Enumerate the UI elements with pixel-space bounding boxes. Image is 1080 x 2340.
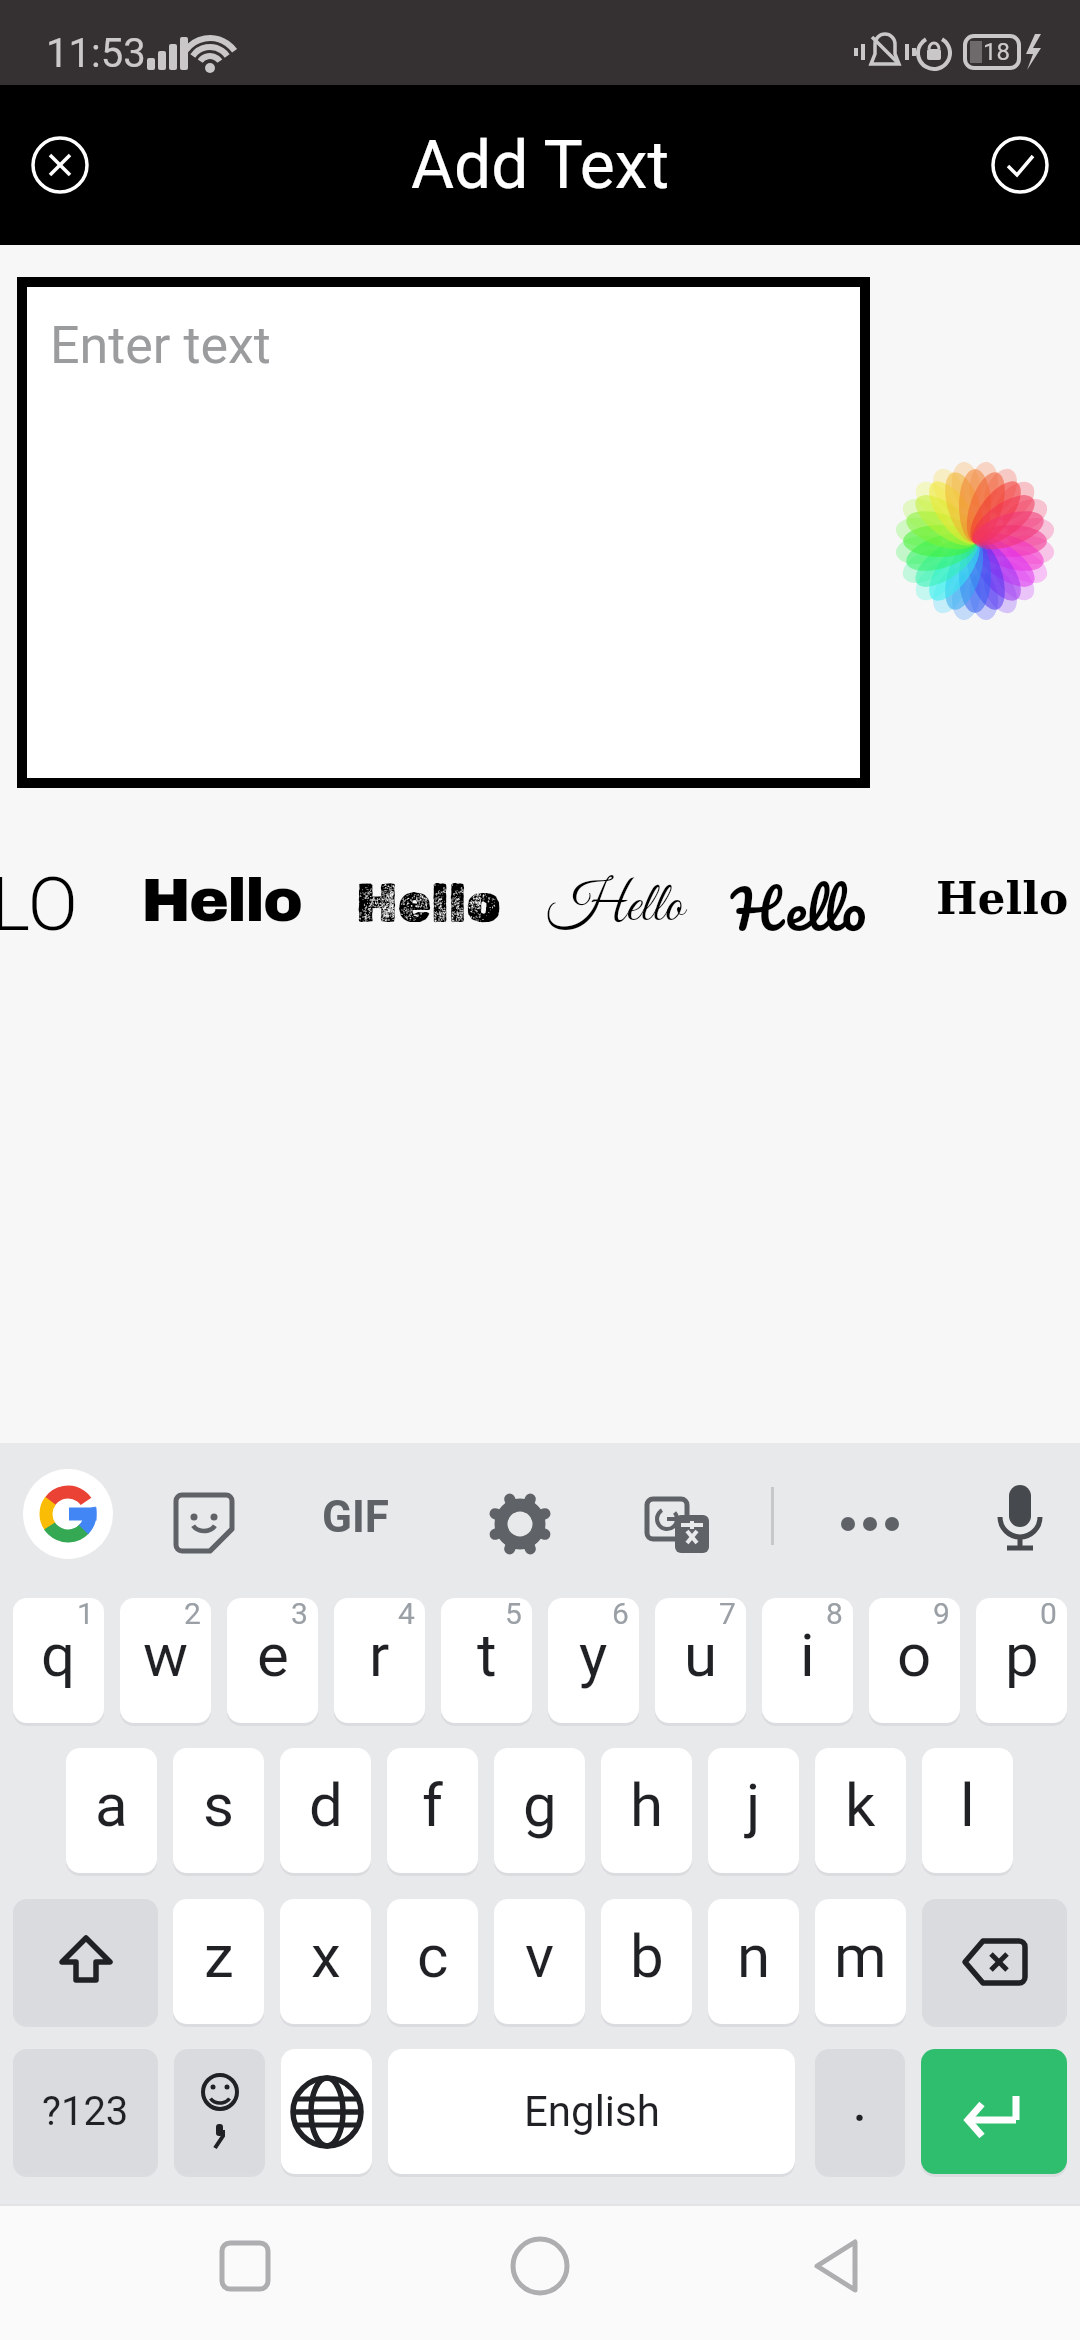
staticText: u xyxy=(684,1620,718,1690)
staticText: Add Text xyxy=(411,127,670,204)
button[interactable] xyxy=(986,131,1054,199)
staticText: q xyxy=(41,1620,76,1690)
staticText: 0 xyxy=(1040,1598,1057,1631)
button[interactable]: . xyxy=(815,2049,905,2174)
staticText: b xyxy=(630,1921,664,1991)
button[interactable]: q xyxy=(13,1598,104,1723)
staticText: m xyxy=(834,1921,887,1991)
button[interactable] xyxy=(26,131,94,199)
staticText: ?123 xyxy=(42,2088,129,2135)
staticText: y xyxy=(579,1620,608,1690)
button[interactable] xyxy=(921,2049,1067,2174)
button[interactable]: h xyxy=(601,1748,692,1873)
staticText: n xyxy=(737,1921,771,1991)
staticText: 3 xyxy=(291,1598,308,1631)
staticText: 9 xyxy=(933,1598,950,1631)
staticText: a xyxy=(95,1770,128,1840)
staticText: LLO xyxy=(0,861,78,948)
button[interactable]: o xyxy=(869,1598,960,1723)
staticText: 5 xyxy=(505,1598,522,1631)
button[interactable]: ?123 xyxy=(13,2049,158,2174)
button[interactable] xyxy=(645,1491,711,1557)
staticText: i xyxy=(800,1620,815,1690)
staticText: Hello xyxy=(356,872,501,936)
staticText: d xyxy=(309,1770,343,1840)
button[interactable]: Enter text xyxy=(17,277,870,788)
staticText: English xyxy=(524,2087,660,2136)
button[interactable]: English xyxy=(388,2049,795,2174)
staticText: Enter text xyxy=(50,315,271,376)
staticText: f xyxy=(422,1770,443,1840)
button[interactable]: t xyxy=(441,1598,532,1723)
staticText: 2 xyxy=(184,1598,201,1631)
staticText: k xyxy=(845,1770,876,1840)
button[interactable]: d xyxy=(280,1748,371,1873)
staticText: p xyxy=(1005,1620,1039,1690)
staticText: Hello xyxy=(936,873,1069,925)
staticText: 1 xyxy=(77,1598,94,1631)
staticText: e xyxy=(257,1620,289,1690)
staticText: v xyxy=(525,1921,555,1991)
staticText: g xyxy=(523,1770,557,1840)
button[interactable]: e xyxy=(227,1598,318,1723)
button[interactable]: i xyxy=(762,1598,853,1723)
staticText: Hello xyxy=(548,872,684,942)
button[interactable]: Hello xyxy=(356,872,501,936)
staticText: t xyxy=(477,1620,497,1690)
button[interactable] xyxy=(23,1469,113,1559)
staticText: 8 xyxy=(826,1598,843,1631)
button[interactable]: b xyxy=(601,1899,692,2024)
button[interactable] xyxy=(987,1483,1053,1559)
button[interactable]: GIF xyxy=(322,1491,389,1543)
button[interactable]: s xyxy=(173,1748,264,1873)
button[interactable]: y xyxy=(548,1598,639,1723)
button[interactable] xyxy=(836,1491,902,1557)
button[interactable]: Hello xyxy=(731,861,867,956)
button[interactable]: w xyxy=(120,1598,211,1723)
button[interactable] xyxy=(172,1491,238,1557)
button[interactable] xyxy=(508,2234,572,2298)
button[interactable] xyxy=(174,2049,265,2174)
staticText: j xyxy=(746,1770,761,1840)
button[interactable] xyxy=(487,1491,553,1557)
button[interactable]: n xyxy=(708,1899,799,2024)
button[interactable] xyxy=(213,2234,277,2298)
staticText: o xyxy=(897,1620,932,1690)
button[interactable]: r xyxy=(334,1598,425,1723)
button[interactable]: Hello xyxy=(936,873,1069,925)
button[interactable]: g xyxy=(494,1748,585,1873)
button[interactable]: Hello xyxy=(141,868,301,933)
button[interactable]: p xyxy=(976,1598,1067,1723)
staticText: 11:53 xyxy=(46,30,146,77)
staticText: Hello xyxy=(141,868,301,933)
staticText: 18 xyxy=(983,38,1010,66)
button[interactable]: u xyxy=(655,1598,746,1723)
staticText: x xyxy=(311,1921,341,1991)
button[interactable]: l xyxy=(922,1748,1013,1873)
button[interactable] xyxy=(885,451,1065,631)
staticText: . xyxy=(853,2076,867,2132)
button[interactable] xyxy=(922,1899,1067,2024)
staticText: s xyxy=(203,1770,234,1840)
button[interactable]: LLO xyxy=(0,861,78,948)
button[interactable]: f xyxy=(387,1748,478,1873)
staticText: w xyxy=(143,1620,189,1690)
button[interactable] xyxy=(805,2234,869,2298)
staticText: Hello xyxy=(731,861,867,956)
staticText: h xyxy=(630,1770,664,1840)
button[interactable]: k xyxy=(815,1748,906,1873)
staticText: r xyxy=(369,1620,390,1690)
button[interactable]: z xyxy=(173,1899,264,2024)
button[interactable]: a xyxy=(66,1748,157,1873)
staticText: 4 xyxy=(398,1598,415,1631)
button[interactable]: m xyxy=(815,1899,906,2024)
button[interactable]: Hello xyxy=(548,872,684,942)
staticText: l xyxy=(960,1770,975,1840)
button[interactable]: x xyxy=(280,1899,371,2024)
button[interactable]: v xyxy=(494,1899,585,2024)
staticText: 7 xyxy=(719,1598,736,1631)
button[interactable] xyxy=(281,2049,372,2174)
button[interactable]: j xyxy=(708,1748,799,1873)
button[interactable] xyxy=(13,1899,158,2024)
button[interactable]: c xyxy=(387,1899,478,2024)
